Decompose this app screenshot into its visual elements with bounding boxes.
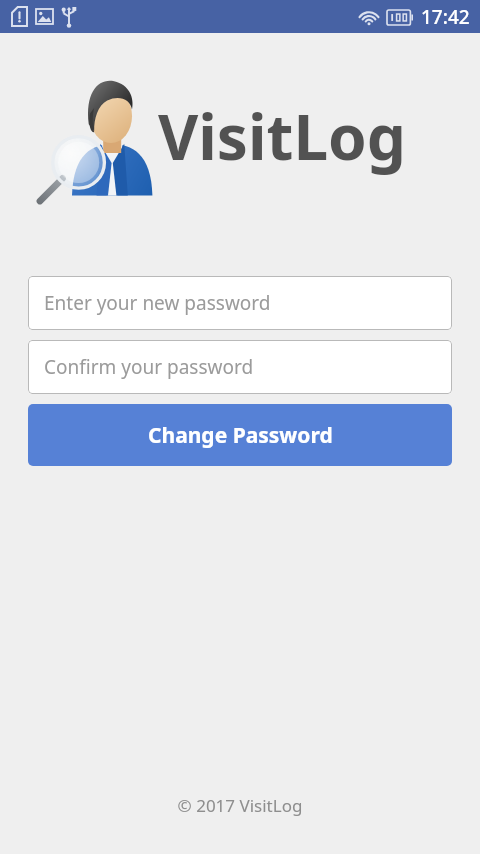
button[interactable]: Enter your new password (28, 276, 452, 330)
button[interactable]: Confirm your password (28, 340, 452, 394)
staticText: Enter your new password (44, 290, 271, 316)
staticText: Change Password (148, 421, 333, 450)
staticText: Confirm your password (44, 354, 254, 380)
button[interactable]: Change Password (28, 404, 452, 466)
staticText: © 2017 VisitLog (0, 794, 480, 817)
staticText: VisitLog (158, 94, 407, 178)
staticText: 17:42 (421, 4, 470, 30)
